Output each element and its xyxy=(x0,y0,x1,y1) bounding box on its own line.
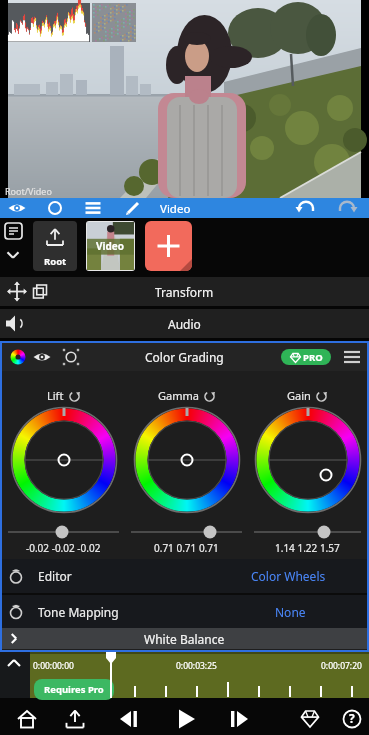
button[interactable] xyxy=(9,405,119,515)
staticText: Root/Video xyxy=(5,185,52,197)
staticText: Gamma xyxy=(158,388,199,403)
button[interactable] xyxy=(98,702,153,735)
staticText: 0.71 0.71 0.71 xyxy=(154,541,219,555)
staticText: Editor xyxy=(38,568,72,584)
staticText: None xyxy=(275,604,306,620)
button[interactable] xyxy=(153,702,208,735)
staticText: Video xyxy=(160,201,191,217)
button[interactable] xyxy=(323,702,363,735)
staticText: Color Wheels xyxy=(251,568,326,584)
button[interactable]: PRO xyxy=(281,349,331,365)
button[interactable]: Root xyxy=(33,221,77,271)
staticText: Gain xyxy=(287,388,311,403)
button[interactable] xyxy=(263,702,323,735)
button[interactable] xyxy=(72,198,110,218)
button[interactable]: Editor xyxy=(2,559,367,593)
button[interactable]: White Balance xyxy=(2,628,367,649)
staticText: Requires Pro xyxy=(44,683,104,696)
button[interactable]: Audio xyxy=(0,309,369,338)
button[interactable] xyxy=(0,218,28,277)
button[interactable] xyxy=(125,517,248,541)
staticText: Tone Mapping xyxy=(38,604,119,620)
button[interactable] xyxy=(132,405,242,515)
button[interactable] xyxy=(0,652,30,698)
staticText: 0:00:07:20 xyxy=(321,660,362,672)
staticText: ? xyxy=(349,710,355,726)
button[interactable] xyxy=(110,198,190,218)
button[interactable]: Tone Mapping xyxy=(2,595,367,628)
button[interactable] xyxy=(208,702,263,735)
staticText: -0.02 -0.02 -0.02 xyxy=(26,541,101,555)
staticText: 1.14 1.22 1.57 xyxy=(275,541,340,555)
button[interactable] xyxy=(329,198,369,218)
staticText: Video xyxy=(96,239,125,253)
staticText: 0:00:03:25 xyxy=(176,660,217,672)
button[interactable] xyxy=(145,221,192,271)
staticText: Audio xyxy=(168,316,201,332)
button[interactable] xyxy=(2,517,125,541)
staticText: Color Grading xyxy=(145,349,224,365)
staticText: Lift xyxy=(47,388,64,403)
button[interactable]: Transform xyxy=(0,277,369,306)
button[interactable]: Requires Pro xyxy=(34,679,114,700)
staticText: White Balance xyxy=(144,631,225,647)
staticText: 0:00:00:00 xyxy=(33,660,74,672)
staticText: PRO xyxy=(303,351,323,364)
staticText: Transform xyxy=(155,284,214,300)
button[interactable] xyxy=(248,517,367,541)
button[interactable] xyxy=(289,198,329,218)
button[interactable] xyxy=(34,198,72,218)
button[interactable] xyxy=(0,702,50,735)
button[interactable] xyxy=(0,198,34,218)
button[interactable] xyxy=(50,702,98,735)
button[interactable]: Color Grading xyxy=(2,343,367,371)
button[interactable] xyxy=(253,405,363,515)
button[interactable]: Video xyxy=(86,221,135,271)
staticText: Root xyxy=(44,255,67,268)
